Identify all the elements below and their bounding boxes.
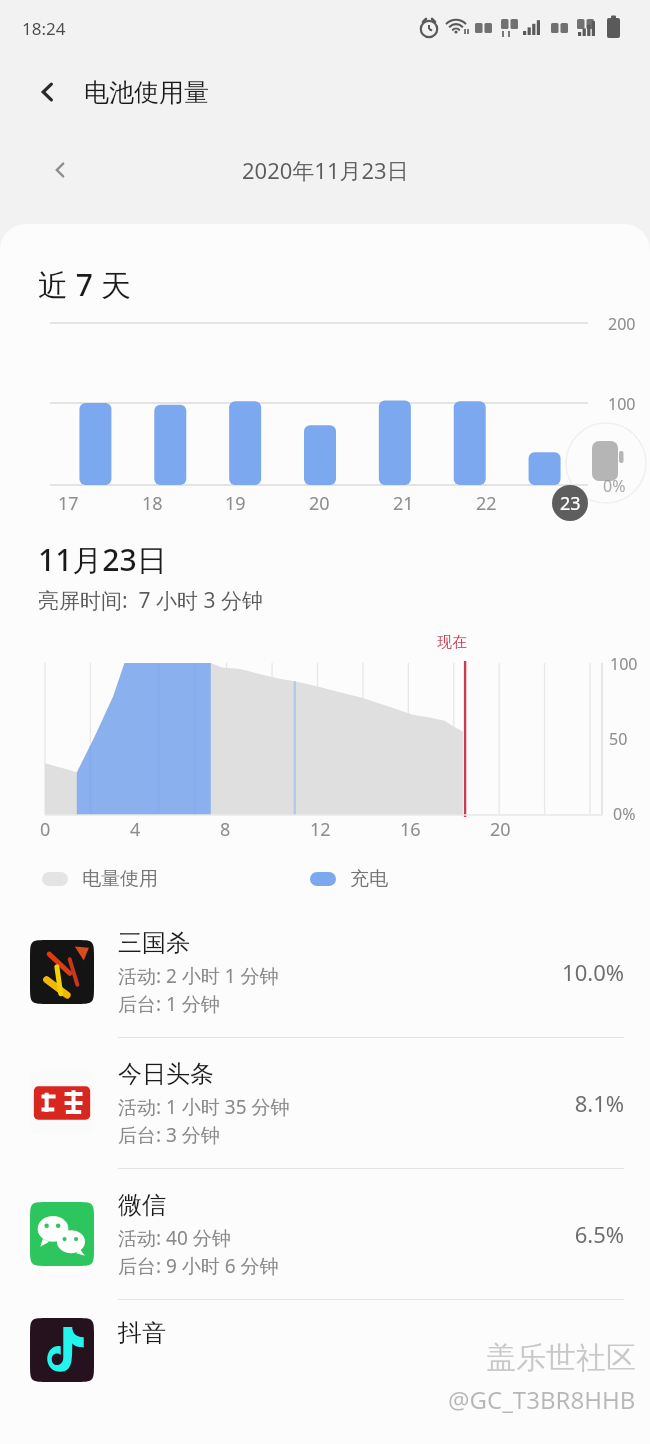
staticText: 活动: 40 分钟	[118, 1225, 231, 1251]
staticText: 4	[130, 817, 141, 842]
staticText: 后台: 1 分钟	[118, 991, 220, 1017]
staticText: 后台: 9 小时 6 分钟	[118, 1253, 279, 1279]
button[interactable]: 抖音	[0, 1300, 650, 1430]
staticText: 8	[220, 817, 231, 842]
staticText: 现在	[437, 633, 467, 652]
staticText: 17	[58, 491, 79, 516]
staticText: 三国杀	[118, 928, 190, 958]
staticText: 100	[610, 653, 638, 675]
button[interactable]: 23	[552, 485, 588, 521]
staticText: 活动: 2 小时 1 分钟	[118, 963, 279, 989]
staticText: @GC_T3BR8HHB	[448, 1383, 636, 1416]
staticText: 8.1%	[574, 1088, 624, 1118]
button[interactable]: 19	[217, 485, 253, 521]
staticText: 12	[310, 817, 331, 842]
staticText: 2020年11月23日	[242, 155, 409, 185]
staticText: 21	[393, 491, 414, 516]
staticText: 微信	[118, 1190, 166, 1220]
button[interactable]: 三国杀	[0, 907, 650, 1037]
staticText: 20	[490, 817, 511, 842]
staticText: 20	[309, 491, 330, 516]
staticText: 10.0%	[562, 957, 624, 987]
staticText: 23	[560, 491, 581, 516]
staticText: 0	[40, 817, 51, 842]
staticText: 活动: 1 小时 35 分钟	[118, 1094, 290, 1120]
staticText: 11月23日	[38, 539, 167, 580]
button[interactable]: 20	[301, 485, 337, 521]
staticText: 电量使用	[82, 867, 158, 891]
staticText: 0%	[613, 803, 636, 825]
staticText: 6.5%	[574, 1219, 624, 1249]
staticText: 电池使用量	[84, 77, 209, 108]
button[interactable]: 18	[134, 485, 170, 521]
button[interactable]: 微信	[0, 1169, 650, 1299]
staticText: 19	[225, 491, 246, 516]
staticText: 22	[476, 491, 497, 516]
staticText: 50	[609, 728, 628, 750]
staticText: 0%	[603, 475, 626, 497]
button[interactable]: Previous day	[38, 148, 82, 192]
staticText: 抖音	[118, 1318, 166, 1348]
staticText: 18	[142, 491, 163, 516]
staticText: 16	[400, 817, 421, 842]
staticText: 充电	[350, 867, 388, 891]
staticText: 亮屏时间: 7 小时 3 分钟	[38, 586, 263, 615]
button[interactable]: 22	[468, 485, 504, 521]
button[interactable]: 21	[385, 485, 421, 521]
button[interactable]: 17	[50, 485, 86, 521]
staticText: 后台: 3 分钟	[118, 1122, 220, 1148]
staticText: 近 7 天	[38, 264, 131, 305]
staticText: 100	[608, 393, 636, 415]
staticText: 200	[608, 313, 636, 335]
button[interactable]: Back	[26, 70, 70, 114]
staticText: 盖乐世社区	[486, 1339, 636, 1377]
staticText: 今日头条	[118, 1059, 214, 1089]
staticText: 18:24	[22, 17, 66, 40]
button[interactable]: 今日头条	[0, 1038, 650, 1168]
